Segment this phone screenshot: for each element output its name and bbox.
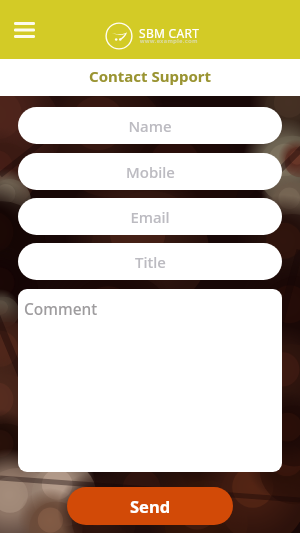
staticText: Email xyxy=(130,207,170,227)
button[interactable]: Send xyxy=(67,487,233,525)
staticText: www.example.com xyxy=(140,37,198,45)
button[interactable]: Mobile xyxy=(18,153,282,190)
staticText: Contact Support xyxy=(89,66,211,86)
staticText: Title xyxy=(135,252,166,272)
button[interactable]: Menu xyxy=(2,8,46,52)
button[interactable]: Title xyxy=(18,243,282,280)
button[interactable]: Email xyxy=(18,198,282,235)
staticText: Comment xyxy=(24,298,98,319)
staticText: Name xyxy=(128,116,172,136)
button[interactable]: Comment xyxy=(18,289,282,472)
button[interactable]: Name xyxy=(18,107,282,144)
staticText: Mobile xyxy=(126,162,175,182)
staticText: SBM CART xyxy=(139,25,200,41)
staticText: Send xyxy=(130,495,171,517)
